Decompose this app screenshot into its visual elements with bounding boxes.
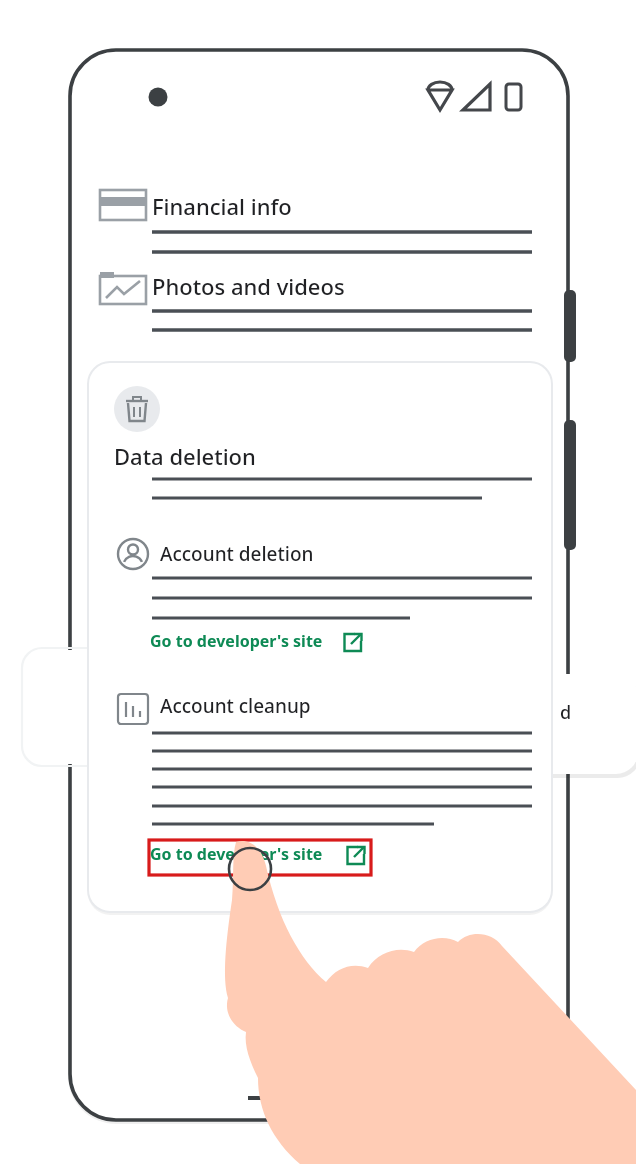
button[interactable]: Photos and videos [152, 271, 452, 305]
staticText: Account cleanup [160, 693, 311, 719]
staticText: Account deletion [160, 541, 314, 567]
staticText: d [560, 700, 572, 725]
staticText: Go to developer's site [150, 630, 323, 652]
button[interactable]: Go to developer's site [150, 630, 376, 660]
button[interactable]: Go to developer's site [150, 843, 376, 873]
staticText: Financial info [152, 191, 292, 221]
staticText: Data deletion [114, 441, 256, 471]
staticText: Go to developer's site [150, 843, 323, 865]
staticText: Photos and videos [152, 271, 345, 301]
button[interactable]: Financial info [152, 191, 402, 225]
